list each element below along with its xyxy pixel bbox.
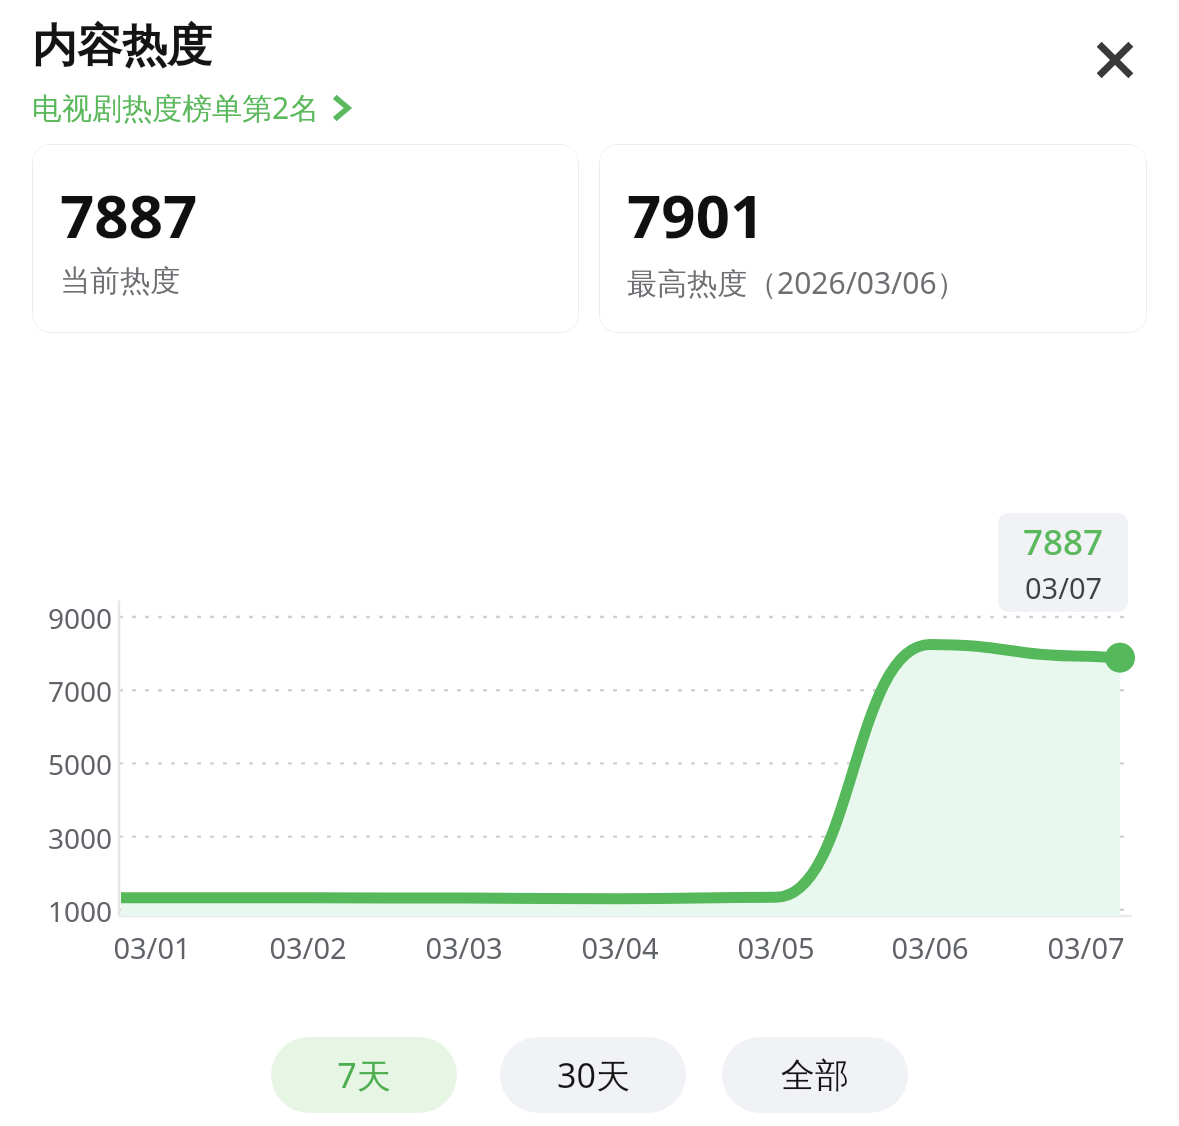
staticText: 内容热度 (32, 18, 212, 75)
button[interactable]: Close (1079, 24, 1151, 96)
button[interactable]: 7887 (32, 144, 579, 333)
staticText: 全部 (781, 1054, 849, 1097)
staticText: 9000 (48, 599, 113, 637)
staticText: 03/07 (1025, 568, 1103, 607)
button[interactable]: 电视剧热度榜单第2名 (32, 87, 350, 128)
staticText: 03/01 (113, 928, 191, 967)
button[interactable]: 全部 (722, 1037, 908, 1113)
staticText: 5000 (48, 745, 113, 783)
staticText: 7000 (48, 672, 113, 710)
staticText: 3000 (48, 819, 113, 857)
staticText: 03/05 (737, 928, 815, 967)
staticText: 7天 (337, 1052, 391, 1098)
staticText: 当前热度 (60, 262, 180, 300)
staticText: 30天 (557, 1052, 630, 1098)
staticText: 7887 (60, 174, 198, 256)
staticText: 电视剧热度榜单第2名 (32, 87, 320, 128)
staticText: 7901 (627, 174, 765, 256)
button[interactable]: 7天 (271, 1037, 457, 1113)
staticText: 03/03 (425, 928, 503, 967)
staticText: 03/04 (581, 928, 659, 967)
button[interactable]: 30天 (500, 1037, 686, 1113)
staticText: 1000 (48, 892, 113, 930)
staticText: 03/07 (1047, 928, 1125, 967)
staticText: 03/02 (269, 928, 347, 967)
staticText: 7887 (1023, 518, 1104, 566)
button[interactable]: 7901 (599, 144, 1147, 333)
staticText: 03/06 (891, 928, 969, 967)
staticText: 最高热度（2026/03/06） (627, 262, 967, 303)
